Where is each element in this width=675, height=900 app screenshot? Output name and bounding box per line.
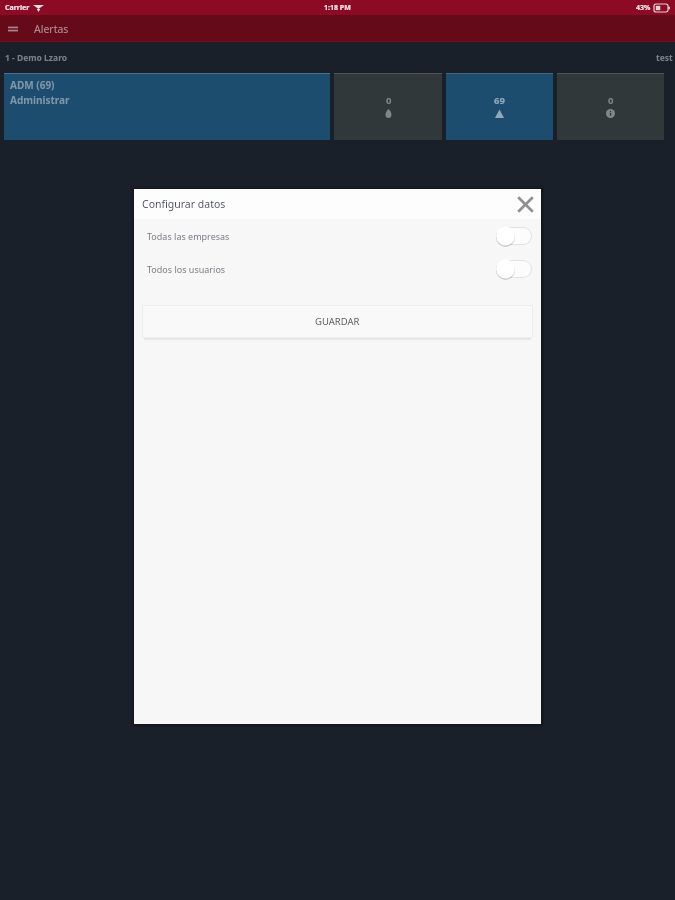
button[interactable]: 69 xyxy=(446,73,553,140)
staticText: test xyxy=(656,52,673,64)
button[interactable]: Close xyxy=(513,192,537,216)
staticText: Administrar xyxy=(10,93,70,107)
staticText: 1 - Demo Lzaro xyxy=(5,52,68,64)
staticText: Carrier xyxy=(5,3,30,13)
staticText: ADM (69) xyxy=(10,78,55,92)
button[interactable]: Menu xyxy=(1,17,24,40)
button[interactable]: Todos los usuarios xyxy=(142,252,533,285)
button[interactable]: 0 xyxy=(334,73,442,140)
staticText: Todos los usuarios xyxy=(147,263,226,275)
staticText: 43% xyxy=(636,3,651,13)
button[interactable]: ADM (69) xyxy=(4,73,330,140)
staticText: 0 xyxy=(608,94,614,107)
button[interactable]: Todas las empresas xyxy=(142,219,533,252)
staticText: GUARDAR xyxy=(315,315,360,328)
staticText: Configurar datos xyxy=(142,197,226,211)
staticText: 1:18 PM xyxy=(324,3,351,13)
staticText: 69 xyxy=(494,94,505,107)
button[interactable]: GUARDAR xyxy=(142,305,533,338)
staticText: 0 xyxy=(386,94,392,107)
staticText: Alertas xyxy=(34,22,69,36)
staticText: Todas las empresas xyxy=(147,230,230,242)
button[interactable]: 0 xyxy=(557,73,664,140)
